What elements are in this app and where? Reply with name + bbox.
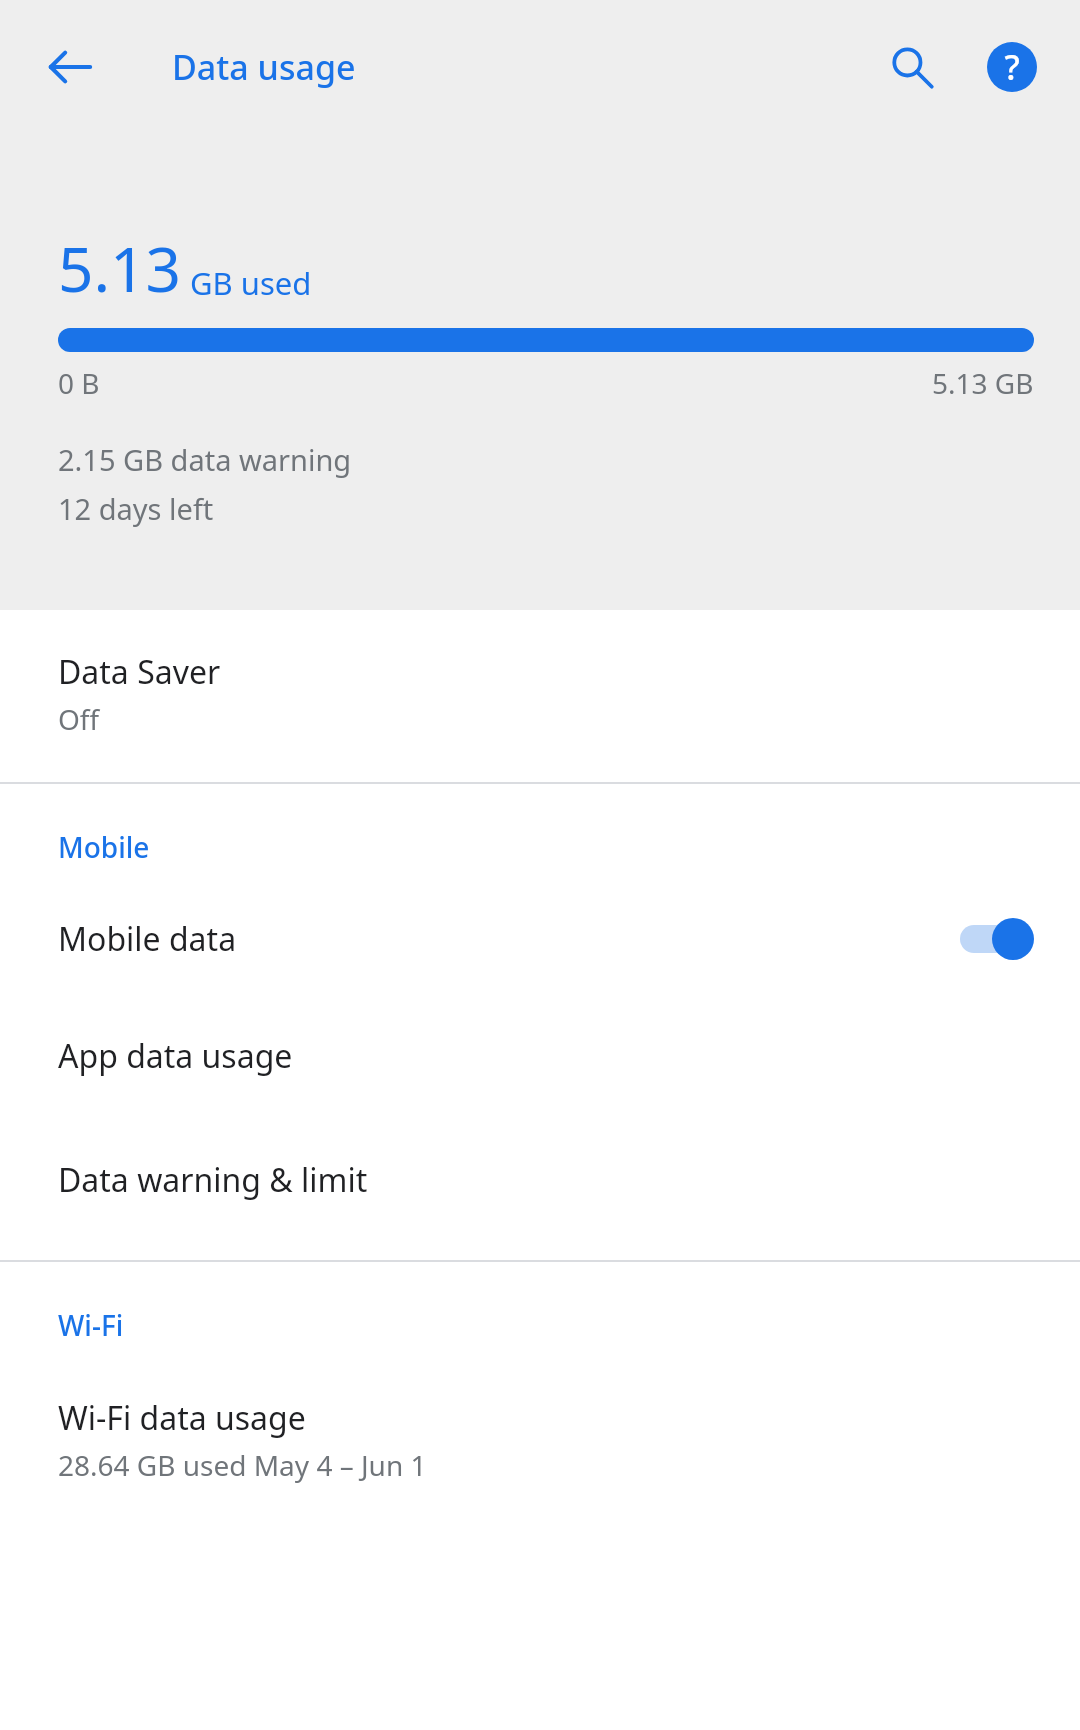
button[interactable]: Search bbox=[866, 21, 958, 113]
staticText: Mobile bbox=[58, 828, 150, 866]
staticText: Wi-Fi data usage bbox=[58, 1396, 306, 1440]
staticText: Data usage bbox=[172, 44, 356, 90]
button[interactable]: Help bbox=[966, 21, 1058, 113]
staticText: 2.15 GB data warning bbox=[58, 440, 352, 479]
button[interactable]: Mobile data bbox=[0, 884, 1080, 994]
staticText: Data Saver bbox=[58, 650, 221, 694]
staticText: 5.13 GB bbox=[932, 364, 1034, 402]
staticText: 12 days left bbox=[58, 489, 214, 528]
button[interactable]: Data Saver bbox=[0, 610, 1080, 782]
staticText: Mobile data bbox=[58, 917, 958, 961]
staticText: Wi-Fi bbox=[58, 1306, 124, 1344]
staticText: App data usage bbox=[58, 1034, 293, 1078]
button[interactable]: Wi-Fi data usage bbox=[0, 1362, 1080, 1518]
staticText: 28.64 GB used May 4 – Jun 1 bbox=[58, 1446, 427, 1484]
staticText: ? bbox=[1004, 44, 1020, 90]
staticText: Off bbox=[58, 700, 100, 738]
button[interactable]: App data usage bbox=[0, 994, 1080, 1118]
staticText: 5.13 bbox=[58, 226, 182, 310]
staticText: 0 B bbox=[58, 364, 100, 402]
staticText: Data warning & limit bbox=[58, 1158, 368, 1202]
staticText: GB used bbox=[190, 262, 312, 304]
button[interactable]: Back bbox=[26, 23, 114, 111]
button[interactable]: Data warning & limit bbox=[0, 1118, 1080, 1242]
